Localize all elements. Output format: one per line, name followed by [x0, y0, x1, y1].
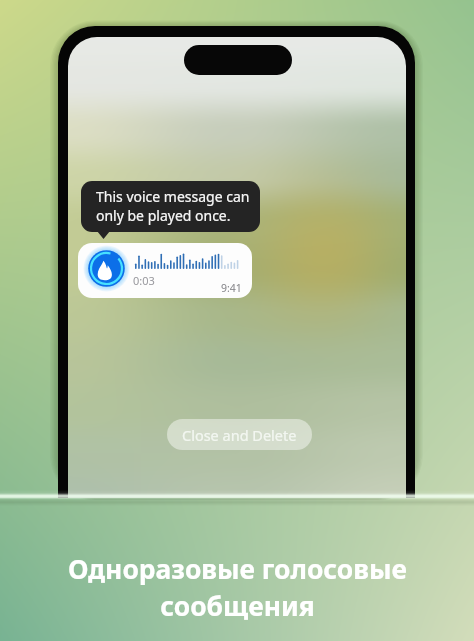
button[interactable]: Close and Delete — [167, 419, 312, 450]
staticText: This voice message can only be played on… — [96, 187, 250, 225]
staticText: 9:41 — [221, 281, 242, 295]
staticText: Одноразовые голосовые сообщения — [68, 551, 407, 624]
staticText: Close and Delete — [182, 425, 297, 445]
staticText: 0:03 — [133, 273, 155, 288]
